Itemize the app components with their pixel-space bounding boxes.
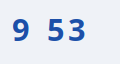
button[interactable]: Time, 9:53: [0, 0, 120, 64]
staticText: 3: [68, 9, 86, 49]
staticText: 9: [12, 9, 30, 49]
staticText: 5: [47, 9, 65, 49]
